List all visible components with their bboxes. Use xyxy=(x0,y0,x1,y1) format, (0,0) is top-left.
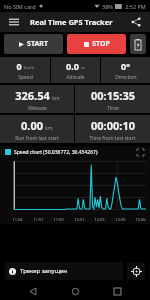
staticText: 00:15:35 xyxy=(91,88,135,103)
button[interactable]: 0.0 xyxy=(51,57,100,83)
button[interactable]: STOP xyxy=(67,34,126,54)
button[interactable]: Battery settings xyxy=(130,34,146,54)
staticText: m xyxy=(81,65,85,71)
staticText: Speed xyxy=(18,74,33,80)
staticText: Mileage xyxy=(28,105,47,110)
staticText: Трекер запущен xyxy=(20,267,68,275)
button[interactable]: Трекер запущен xyxy=(5,262,123,280)
staticText: 0.00 xyxy=(21,118,43,133)
staticText: STOP xyxy=(92,39,110,49)
button[interactable]: 326.54 xyxy=(0,85,74,113)
staticText: START xyxy=(27,39,48,49)
staticText: 11:57 xyxy=(33,217,44,222)
staticText: 12:06 xyxy=(135,217,146,222)
staticText: 0.0 xyxy=(66,60,79,72)
staticText: km xyxy=(45,125,53,132)
staticText: 326.54 xyxy=(15,88,50,103)
staticText: km xyxy=(52,95,60,102)
staticText: 11:59 xyxy=(53,217,64,222)
staticText: Time from last start xyxy=(89,135,136,140)
staticText: 38% xyxy=(102,3,113,10)
staticText: 11:54 xyxy=(12,217,23,222)
staticText: 12:03 xyxy=(94,217,105,222)
staticText: Speed chart (50.036772, 30.454267) xyxy=(14,149,98,156)
button[interactable]: 0° xyxy=(101,57,150,83)
button[interactable]: Home xyxy=(66,282,84,300)
staticText: 00:00:10 xyxy=(91,118,135,133)
staticText: No SIM card xyxy=(4,3,36,10)
button[interactable]: 00:00:10 xyxy=(75,115,150,143)
button[interactable]: 0 xyxy=(0,57,50,83)
staticText: 0 xyxy=(16,60,22,72)
staticText: Time xyxy=(107,105,119,110)
staticText: Altitude xyxy=(66,74,85,80)
staticText: 0° xyxy=(121,60,130,72)
button[interactable]: 00:15:35 xyxy=(75,85,150,113)
staticText: 12:05 xyxy=(115,217,126,222)
button[interactable]: My location xyxy=(127,262,145,280)
staticText: Real Time GPS Tracker xyxy=(30,17,113,27)
staticText: Direction xyxy=(115,74,137,80)
staticText: Run from last start xyxy=(15,135,59,140)
staticText: 2:52 PM xyxy=(125,3,146,10)
staticText: 12:01 xyxy=(74,217,85,222)
button[interactable]: 0.00 xyxy=(0,115,74,143)
button[interactable]: Fullscreen chart xyxy=(135,147,145,157)
button[interactable]: Back xyxy=(24,282,42,300)
button[interactable]: Share xyxy=(128,14,144,30)
button[interactable]: START xyxy=(4,34,63,54)
button[interactable]: Menu xyxy=(6,14,22,30)
staticText: km/h xyxy=(24,65,34,71)
button[interactable]: Recent apps xyxy=(108,282,126,300)
